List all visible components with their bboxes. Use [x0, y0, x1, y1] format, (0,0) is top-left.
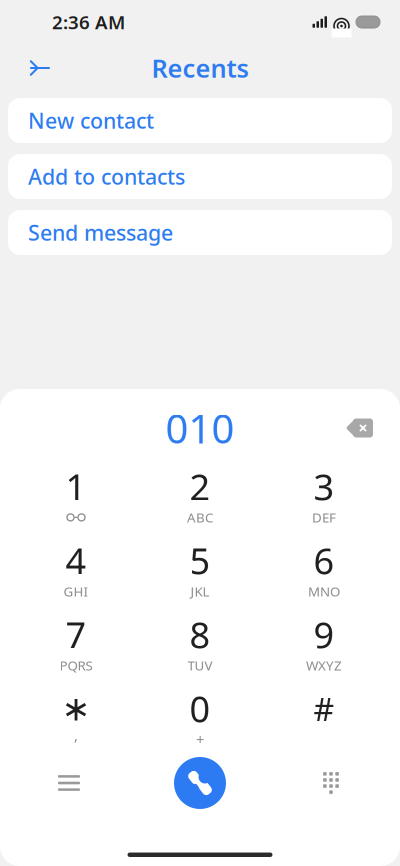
button[interactable]: Send message: [8, 210, 392, 255]
staticText: TUV: [187, 657, 212, 674]
button[interactable]: 7: [14, 609, 138, 673]
button[interactable]: 3: [262, 461, 386, 525]
staticText: 2:36 AM: [52, 10, 125, 34]
staticText: 9: [313, 611, 334, 658]
button[interactable]: Add to contacts: [8, 154, 392, 199]
button[interactable]: Call options: [40, 754, 98, 812]
button[interactable]: 6: [262, 535, 386, 599]
button[interactable]: New contact: [8, 98, 392, 143]
staticText: DEF: [312, 509, 336, 526]
staticText: ∗: [61, 689, 90, 728]
button[interactable]: ∗: [14, 683, 138, 747]
staticText: ABC: [187, 509, 213, 526]
staticText: Add to contacts: [28, 162, 185, 191]
staticText: 1: [65, 463, 86, 510]
staticText: Recents: [151, 51, 248, 85]
button[interactable]: Hide keypad: [302, 754, 360, 812]
staticText: ,: [74, 725, 78, 745]
staticText: 6: [313, 537, 334, 584]
staticText: PQRS: [59, 657, 92, 674]
staticText: Send message: [28, 218, 173, 247]
button[interactable]: 1: [14, 461, 138, 525]
staticText: JKL: [190, 583, 209, 600]
staticText: 2: [189, 463, 210, 510]
staticText: 010: [165, 401, 234, 454]
staticText: 4: [65, 537, 86, 584]
staticText: 8: [189, 611, 210, 658]
button[interactable]: Back: [18, 46, 62, 90]
button[interactable]: #: [262, 683, 386, 747]
button[interactable]: 4: [14, 535, 138, 599]
staticText: 0: [189, 685, 210, 732]
button[interactable]: 0: [138, 683, 262, 747]
button[interactable]: 2: [138, 461, 262, 525]
button[interactable]: 5: [138, 535, 262, 599]
button[interactable]: Delete: [338, 406, 382, 450]
staticText: 5: [189, 537, 210, 584]
button[interactable]: 9: [262, 609, 386, 673]
button[interactable]: 8: [138, 609, 262, 673]
staticText: WXYZ: [306, 657, 342, 674]
staticText: 7: [65, 611, 86, 658]
staticText: #: [313, 687, 334, 730]
staticText: 3: [313, 463, 334, 510]
staticText: New contact: [28, 106, 154, 135]
staticText: +: [196, 730, 204, 749]
staticText: GHI: [63, 583, 88, 600]
staticText: MNO: [308, 583, 340, 600]
button[interactable]: Call: [171, 754, 229, 812]
